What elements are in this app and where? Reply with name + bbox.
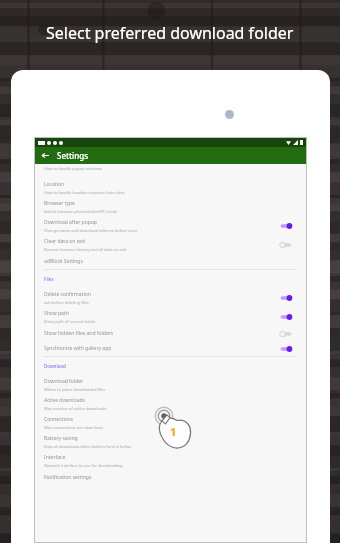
staticText: Interface <box>44 454 66 461</box>
button[interactable]: Toggle on <box>279 294 293 302</box>
staticText: Where to place downloaded files <box>44 387 106 392</box>
button[interactable]: Show hidden files and folders <box>44 326 297 341</box>
staticText: Network interface to use for downloading <box>44 463 123 468</box>
staticText: Synchronize with gallery app <box>44 345 112 352</box>
button[interactable]: Battery saving <box>44 432 297 451</box>
button[interactable]: Download after popup <box>44 216 297 235</box>
staticText: Show hidden files and folders <box>44 330 114 337</box>
button[interactable]: Toggle off <box>279 330 293 338</box>
button[interactable]: Clear data on exit <box>44 235 297 254</box>
staticText: Notification settings <box>44 474 92 481</box>
staticText: Settings <box>57 150 89 161</box>
staticText: Active downloads <box>44 397 85 404</box>
button[interactable]: Browser type <box>44 197 297 216</box>
staticText: Change name and download address before … <box>44 228 137 233</box>
button[interactable]: Delete confirmation <box>44 288 297 307</box>
staticText: Files <box>44 276 54 282</box>
staticText: Switch between phone/tablet/PC mode <box>44 209 118 214</box>
staticText: Download <box>44 363 66 369</box>
staticText: Delete confirmation <box>44 291 91 298</box>
button[interactable]: Location <box>44 178 297 197</box>
staticText: Connections <box>44 416 74 423</box>
button[interactable]: Download folder <box>44 375 297 394</box>
button[interactable]: Synchronize with gallery app <box>44 341 297 356</box>
staticText: Stop all downloads when battery level is… <box>44 444 132 449</box>
button[interactable]: Back <box>40 150 51 161</box>
staticText: Show path <box>44 310 69 317</box>
button[interactable]: adBlock Settings <box>44 254 297 269</box>
staticText: Browser type <box>44 200 75 207</box>
staticText: Show path of current folder <box>44 319 96 324</box>
staticText: Battery saving <box>44 435 78 442</box>
button[interactable]: Toggle on <box>279 345 293 353</box>
button[interactable]: Interface <box>44 451 297 470</box>
staticText: Select preferred download folder <box>46 22 294 44</box>
button[interactable]: Toggle on <box>279 313 293 321</box>
staticText: Remove browser history and all data on e… <box>44 247 127 252</box>
button[interactable]: Notification settings <box>44 470 297 485</box>
staticText: 1 <box>170 424 177 439</box>
staticText: adBlock Settings <box>44 258 83 265</box>
staticText: Clear data on exit <box>44 238 86 245</box>
button[interactable]: Active downloads <box>44 394 297 413</box>
staticText: ask before deleting files <box>44 300 89 305</box>
button[interactable]: Connections <box>44 413 297 432</box>
staticText: Max connections per download <box>44 425 103 430</box>
staticText: Download folder <box>44 378 84 385</box>
staticText: Max number of active downloads <box>44 406 107 411</box>
staticText: Download after popup <box>44 219 97 226</box>
button[interactable]: Show path <box>44 307 297 326</box>
staticText: How to handle location requests from sit… <box>44 190 125 195</box>
button[interactable]: Toggle on <box>279 222 293 230</box>
staticText: How to handle popup windows <box>44 166 103 171</box>
button[interactable]: Toggle off <box>279 241 293 249</box>
staticText: Location <box>44 181 65 188</box>
